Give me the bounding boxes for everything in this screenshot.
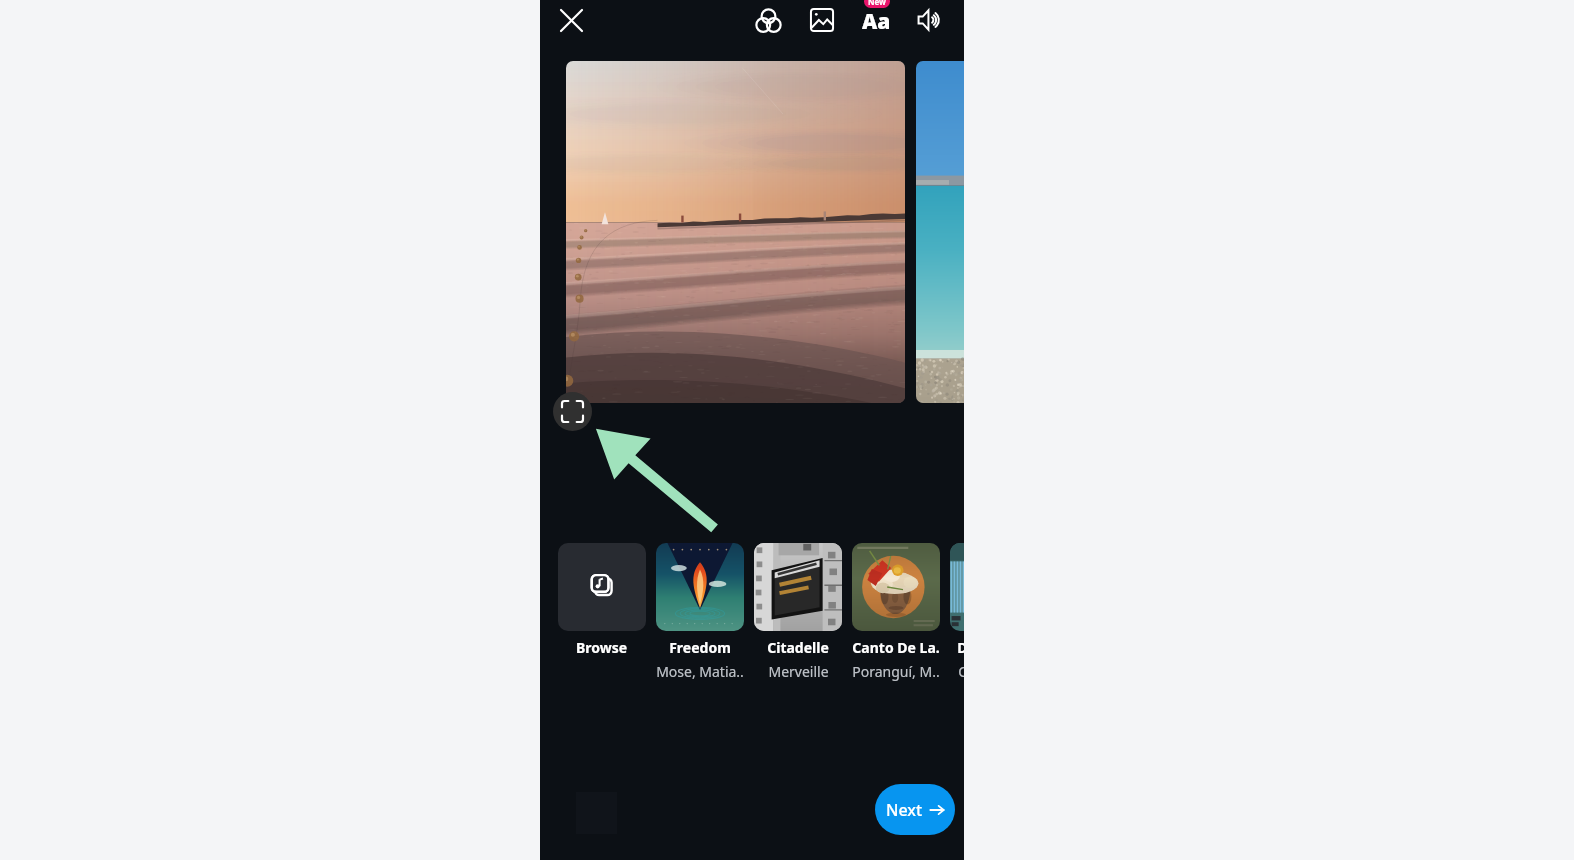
staticText: New [868, 0, 886, 7]
button[interactable]: Next [875, 784, 955, 835]
button[interactable]: Sound [912, 2, 948, 38]
staticText: Mose, Matia.. [656, 662, 744, 681]
staticText: Aa [862, 7, 891, 36]
staticText: Poranguí, M.. [852, 662, 940, 681]
staticText: Merveille [768, 662, 829, 681]
button[interactable]: Da [950, 543, 964, 681]
button[interactable]: Canto De La.. [852, 543, 940, 681]
button[interactable]: Close [553, 2, 589, 38]
staticText: Ca [958, 662, 964, 681]
button[interactable]: Filters [750, 2, 786, 38]
button[interactable]: Citadelle [754, 543, 842, 681]
button[interactable]: Add photo [804, 2, 840, 38]
button[interactable]: Beach sunset photo [566, 61, 905, 403]
button[interactable]: Text [858, 2, 894, 38]
button[interactable]: Freedom [656, 543, 744, 681]
button[interactable]: Expand [553, 392, 592, 431]
staticText: Da [957, 638, 964, 657]
staticText: Canto De La.. [852, 638, 940, 657]
button[interactable]: Sea photo [916, 61, 964, 403]
staticText: Freedom [669, 638, 731, 657]
staticText: Citadelle [767, 638, 829, 657]
staticText: Browse [576, 638, 628, 657]
staticText: Next [886, 799, 923, 821]
button[interactable]: Browse [558, 543, 646, 657]
